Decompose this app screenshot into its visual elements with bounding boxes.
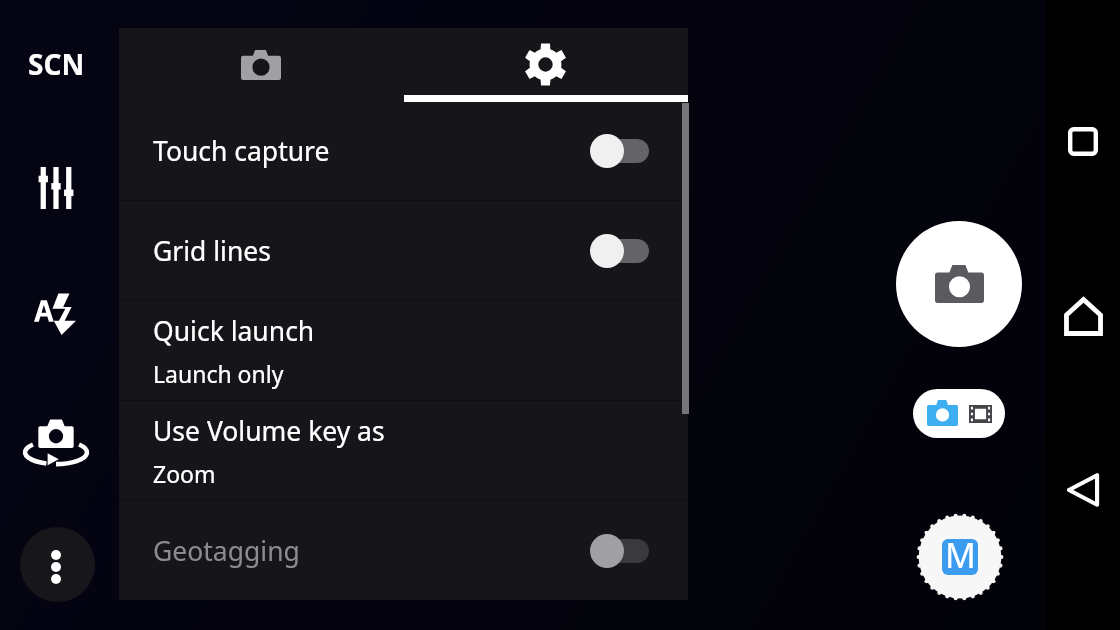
button[interactable]: More options — [20, 527, 95, 602]
button[interactable]: Touch capture — [119, 101, 688, 200]
button[interactable]: Photo video toggle — [913, 389, 1005, 438]
button[interactable]: Flash auto — [19, 275, 91, 347]
button[interactable]: Geotagging switch — [590, 530, 649, 572]
staticText: Touch capture — [153, 133, 330, 169]
staticText: Quick launch — [153, 313, 315, 349]
button[interactable]: Recents — [1046, 106, 1120, 176]
button[interactable]: Scene mode — [0, 37, 113, 91]
button[interactable]: Touch capture switch — [590, 130, 649, 172]
button[interactable]: Quick launch — [119, 301, 688, 400]
button[interactable]: Camera tab — [119, 28, 403, 101]
staticText: Use Volume key as — [153, 413, 385, 449]
staticText: Grid lines — [153, 233, 271, 269]
button[interactable]: Settings sliders — [20, 152, 92, 224]
button[interactable]: Home — [1046, 281, 1120, 351]
button[interactable]: Switch camera — [20, 406, 92, 478]
button[interactable]: Grid lines — [119, 201, 688, 300]
staticText: SCN — [28, 45, 85, 83]
button[interactable]: Settings tab — [403, 28, 688, 101]
button[interactable]: Mode — [914, 511, 1006, 603]
button[interactable]: Use Volume key as — [119, 401, 688, 500]
button[interactable]: Back — [1046, 455, 1120, 525]
button[interactable]: Shutter — [896, 221, 1022, 347]
button[interactable]: Grid lines switch — [590, 230, 649, 272]
staticText: M — [945, 539, 976, 568]
staticText: Zoom — [153, 458, 216, 489]
staticText: Geotagging — [153, 533, 300, 569]
staticText: Launch only — [153, 358, 284, 389]
button[interactable]: Geotagging — [119, 501, 688, 600]
